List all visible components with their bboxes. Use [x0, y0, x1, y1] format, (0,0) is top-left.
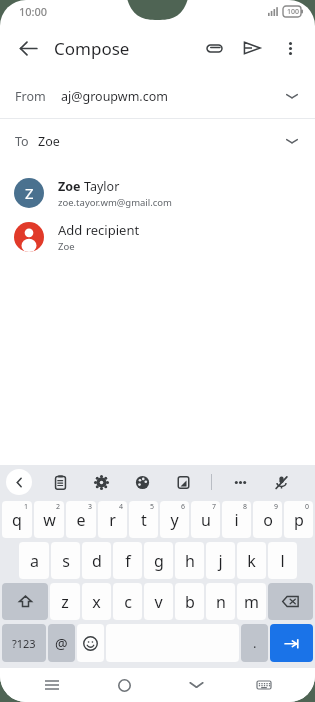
- button[interactable]: j: [206, 542, 235, 579]
- button[interactable]: x: [82, 583, 111, 620]
- staticText: x: [92, 591, 101, 613]
- staticText: 1: [24, 502, 29, 512]
- staticText: From: [15, 88, 46, 105]
- staticText: c: [124, 591, 132, 613]
- button[interactable]: More options: [271, 29, 309, 67]
- staticText: v: [154, 591, 163, 613]
- button[interactable]: Home: [107, 668, 141, 702]
- button[interactable]: q: [2, 501, 32, 538]
- button[interactable]: o: [253, 501, 282, 538]
- button[interactable]: Clipboard: [47, 469, 73, 495]
- staticText: n: [216, 591, 226, 613]
- button[interactable]: s: [51, 542, 80, 579]
- button[interactable]: Emoji: [77, 624, 104, 662]
- button[interactable]: z: [50, 583, 80, 620]
- button[interactable]: p: [284, 501, 313, 538]
- button[interactable]: Settings: [88, 469, 114, 495]
- button[interactable]: l: [268, 542, 297, 579]
- button[interactable]: Back: [8, 28, 48, 68]
- staticText: m: [244, 591, 259, 613]
- staticText: z: [61, 591, 69, 613]
- staticText: e: [76, 509, 86, 531]
- button[interactable]: g: [144, 542, 173, 579]
- button[interactable]: y: [160, 501, 189, 538]
- staticText: h: [185, 550, 195, 572]
- staticText: 7: [212, 502, 217, 512]
- staticText: 0: [305, 502, 310, 512]
- button[interactable]: Add recipient: [0, 215, 315, 259]
- button[interactable]: Hide keyboard: [179, 668, 213, 702]
- staticText: w: [43, 509, 56, 531]
- button[interactable]: f: [113, 542, 142, 579]
- staticText: 3: [88, 502, 93, 512]
- button[interactable]: Close toolbar: [6, 469, 32, 495]
- staticText: i: [234, 509, 239, 531]
- button[interactable]: Send: [233, 29, 271, 67]
- button[interactable]: .: [241, 624, 268, 662]
- button[interactable]: Voice input off: [268, 469, 294, 495]
- button[interactable]: v: [144, 583, 173, 620]
- button[interactable]: Attach file: [195, 29, 233, 67]
- staticText: o: [263, 509, 273, 531]
- staticText: y: [170, 509, 179, 531]
- button[interactable]: Backspace: [268, 583, 313, 620]
- button[interactable]: a: [19, 542, 49, 579]
- staticText: 6: [181, 502, 186, 512]
- staticText: aj@groupwm.com: [61, 88, 168, 105]
- staticText: g: [154, 550, 164, 572]
- staticText: b: [185, 591, 195, 613]
- staticText: Zoe: [58, 240, 75, 253]
- button[interactable]: Recent apps: [35, 668, 69, 702]
- button[interactable]: Themes: [129, 469, 155, 495]
- button[interactable]: Shift: [2, 583, 48, 620]
- button[interactable]: Next: [270, 624, 313, 662]
- button[interactable]: i: [222, 501, 251, 538]
- button[interactable]: m: [237, 583, 266, 620]
- button[interactable]: c: [113, 583, 142, 620]
- staticText: k: [247, 550, 256, 572]
- button[interactable]: n: [206, 583, 235, 620]
- button[interactable]: w: [34, 501, 64, 538]
- staticText: ?123: [12, 636, 36, 651]
- staticText: Zoe: [58, 178, 84, 195]
- button[interactable]: @: [48, 624, 75, 662]
- button[interactable]: k: [237, 542, 266, 579]
- staticText: 10:00: [19, 4, 48, 19]
- staticText: 9: [274, 502, 279, 512]
- staticText: u: [201, 509, 211, 531]
- button[interactable]: To: [0, 119, 315, 163]
- staticText: .: [253, 634, 257, 652]
- staticText: j: [218, 550, 223, 572]
- staticText: 100: [287, 7, 300, 17]
- button[interactable]: ?123: [2, 624, 46, 662]
- button[interactable]: b: [175, 583, 204, 620]
- staticText: p: [294, 509, 304, 531]
- staticText: q: [12, 509, 22, 531]
- staticText: t: [141, 509, 147, 531]
- staticText: Z: [25, 183, 34, 203]
- button[interactable]: Z: [0, 171, 315, 215]
- button[interactable]: t: [129, 501, 158, 538]
- button[interactable]: u: [191, 501, 220, 538]
- staticText: 4: [119, 502, 124, 512]
- staticText: Taylor: [84, 178, 120, 195]
- staticText: a: [30, 550, 39, 572]
- button[interactable]: d: [82, 542, 111, 579]
- staticText: 2: [56, 502, 61, 512]
- staticText: Zoe: [38, 133, 60, 150]
- staticText: s: [62, 550, 70, 572]
- button[interactable]: More: [227, 469, 253, 495]
- button[interactable]: Switch keyboard: [247, 668, 281, 702]
- staticText: d: [92, 550, 102, 572]
- button[interactable]: e: [66, 501, 96, 538]
- staticText: Compose: [54, 37, 130, 60]
- staticText: To: [15, 133, 29, 150]
- staticText: r: [109, 509, 116, 531]
- button[interactable]: Resize keyboard: [170, 469, 196, 495]
- button[interactable]: r: [98, 501, 127, 538]
- staticText: l: [280, 550, 285, 572]
- button[interactable]: From: [0, 74, 315, 118]
- button[interactable]: h: [175, 542, 204, 579]
- staticText: Add recipient: [58, 221, 140, 239]
